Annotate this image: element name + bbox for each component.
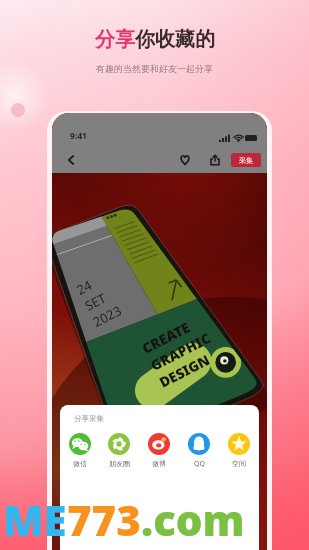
staticText: 微博 <box>152 459 166 468</box>
button[interactable]: 微信 <box>60 432 99 469</box>
staticText: QQ <box>194 459 205 469</box>
button[interactable]: Back <box>60 149 82 171</box>
button[interactable]: 空间 <box>219 432 259 469</box>
staticText: GRAPHIC <box>147 328 214 375</box>
staticText: 分享 <box>95 27 135 52</box>
staticText: .com <box>141 491 245 548</box>
button[interactable]: Like <box>175 150 195 170</box>
staticText: 你收藏的 <box>135 27 215 52</box>
staticText: 采集 <box>239 156 253 165</box>
staticText: DESIGN <box>156 350 213 392</box>
staticText: ME <box>3 491 67 548</box>
staticText: 9:41 <box>70 130 87 142</box>
staticText: CREATE <box>139 317 194 358</box>
staticText: 2023 <box>90 301 125 331</box>
staticText: 分享采集 <box>74 414 104 423</box>
button[interactable]: Share <box>205 150 225 170</box>
button[interactable]: QQ <box>179 432 219 470</box>
staticText: 空间 <box>232 459 246 468</box>
button[interactable]: 采集 <box>231 153 261 167</box>
staticText: 24 <box>73 276 95 299</box>
staticText: 朋友圈 <box>109 459 130 468</box>
staticText: 有趣的当然要和好友一起分享 <box>96 63 213 74</box>
staticText: 微信 <box>73 459 87 468</box>
staticText: SET <box>81 289 109 315</box>
button[interactable]: 微博 <box>139 432 179 469</box>
staticText: 773 <box>67 491 141 548</box>
button[interactable]: 朋友圈 <box>99 432 139 469</box>
